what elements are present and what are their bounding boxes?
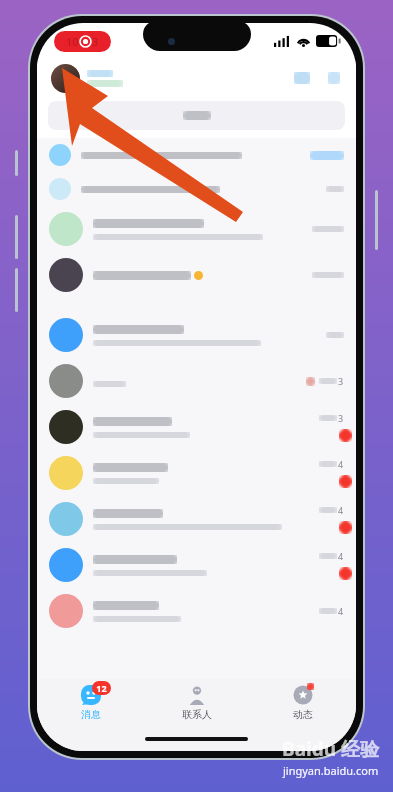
- staticText: 消息: [81, 708, 101, 721]
- button[interactable]: [37, 206, 356, 252]
- button[interactable]: [37, 138, 356, 172]
- button[interactable]: 4: [37, 588, 356, 634]
- staticText: 4: [338, 605, 344, 617]
- staticText: Baidu 经验: [282, 736, 379, 762]
- button[interactable]: 3: [37, 358, 356, 404]
- staticText: 联系人: [182, 708, 212, 721]
- button[interactable]: [37, 172, 356, 206]
- staticText: 12: [96, 682, 107, 694]
- staticText: 3: [338, 375, 344, 387]
- button[interactable]: More: [328, 72, 340, 84]
- button[interactable]: [37, 252, 356, 298]
- button[interactable]: 4: [37, 542, 356, 588]
- staticText: 动态: [293, 708, 313, 721]
- button[interactable]: [37, 312, 356, 358]
- button[interactable]: 动态: [250, 679, 356, 727]
- staticText: 10: [66, 34, 79, 49]
- staticText: 4: [338, 504, 344, 516]
- button[interactable]: Profile: [51, 64, 80, 93]
- staticText: 4: [338, 550, 344, 562]
- button[interactable]: 联系人: [144, 679, 250, 727]
- staticText: 3: [92, 34, 99, 49]
- button[interactable]: 4: [37, 496, 356, 542]
- button[interactable]: 12: [37, 679, 144, 727]
- button[interactable]: 3: [37, 404, 356, 450]
- button[interactable]: [48, 101, 345, 130]
- staticText: 4: [338, 458, 344, 470]
- staticText: 3: [338, 412, 344, 424]
- staticText: jingyan.baidu.com: [283, 763, 379, 778]
- button[interactable]: 4: [37, 450, 356, 496]
- button[interactable]: Add: [294, 72, 310, 84]
